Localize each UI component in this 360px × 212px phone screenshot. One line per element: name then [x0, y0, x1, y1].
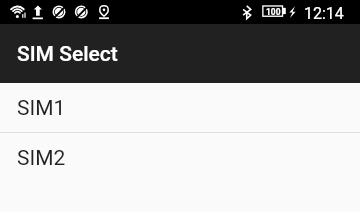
staticText: SIM2	[17, 146, 66, 171]
staticText: SIM Select	[17, 42, 118, 67]
staticText: 100	[266, 7, 281, 17]
button[interactable]: SIM1	[0, 83, 360, 133]
staticText: 12:14	[304, 4, 344, 23]
button[interactable]: SIM2	[0, 133, 360, 183]
staticText: SIM1	[17, 96, 66, 121]
